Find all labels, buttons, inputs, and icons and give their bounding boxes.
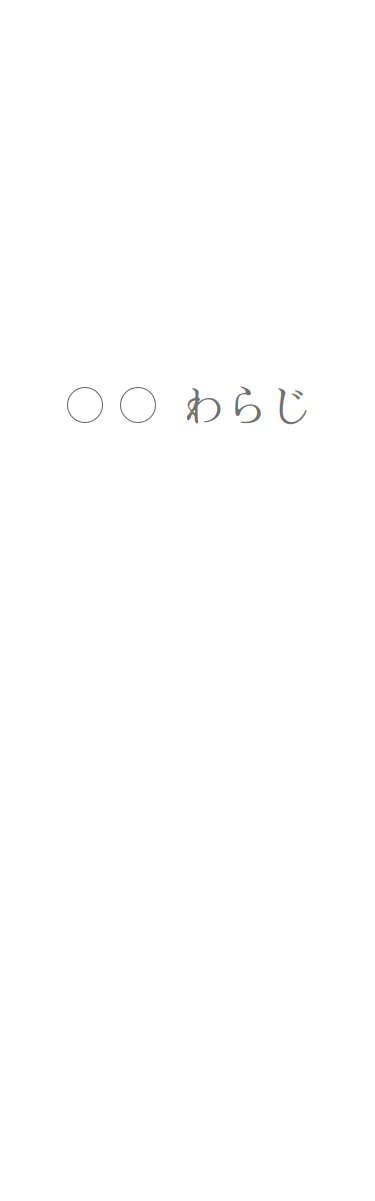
staticText: わらじ	[181, 371, 313, 435]
button[interactable]: わらじ	[0, 387, 375, 423]
